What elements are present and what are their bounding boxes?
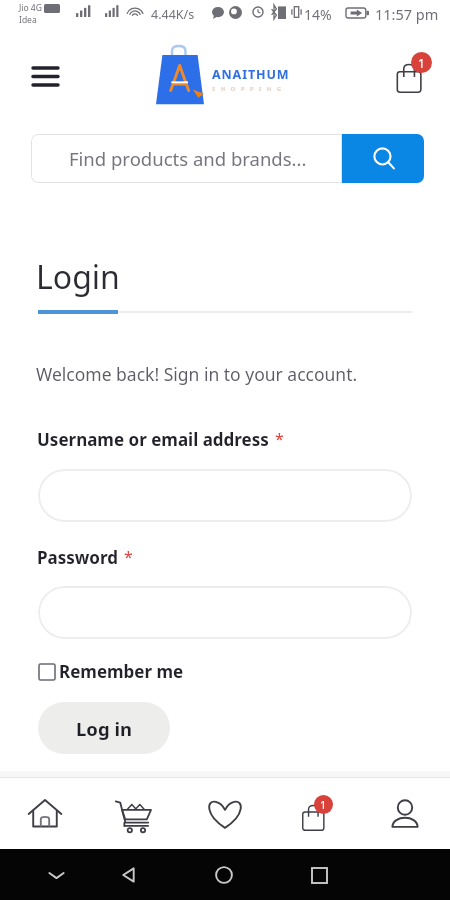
staticText: Jio 4G — [19, 2, 42, 14]
staticText: S H O P P I N G — [212, 85, 284, 93]
button[interactable]: Remember me — [38, 660, 184, 683]
staticText: Welcome back! Sign in to your account. — [36, 362, 358, 386]
button[interactable]: Home — [0, 778, 90, 849]
staticText: 11:57 pm — [375, 4, 439, 24]
button[interactable]: Cart — [90, 778, 180, 849]
staticText: 1 — [418, 55, 425, 71]
button[interactable]: Hide keyboard — [34, 853, 78, 897]
staticText: Find products and brands... — [69, 146, 307, 171]
button[interactable]: Wishlist — [180, 778, 270, 849]
staticText: Remember me — [59, 660, 184, 683]
staticText: Password — [37, 546, 118, 569]
button[interactable]: Shopping cart — [385, 48, 437, 100]
button[interactable]: Username or email address field — [38, 469, 412, 522]
button[interactable]: Home — [202, 853, 246, 897]
button[interactable]: Recent apps — [297, 853, 341, 897]
staticText: Log in — [76, 716, 132, 741]
button[interactable]: Menu — [19, 50, 71, 102]
staticText: 1 — [320, 797, 327, 812]
button[interactable]: Log in — [38, 702, 170, 754]
staticText: Username or email address — [37, 428, 269, 451]
button[interactable]: Password field — [38, 586, 412, 639]
button[interactable]: Login — [36, 250, 120, 314]
button[interactable]: Account — [360, 778, 450, 849]
staticText: Idea — [19, 14, 37, 26]
button[interactable]: Back — [107, 853, 151, 897]
button[interactable]: Search — [342, 134, 424, 183]
button[interactable]: Bag — [270, 778, 360, 849]
staticText: * — [275, 428, 284, 450]
staticText: 4.44K/s — [151, 6, 195, 23]
staticText: Login — [36, 255, 120, 299]
button[interactable]: Find products and brands... — [31, 134, 342, 183]
staticText: * — [124, 546, 133, 568]
staticText: ANAITHUM — [212, 66, 290, 83]
staticText: 14% — [304, 5, 332, 24]
